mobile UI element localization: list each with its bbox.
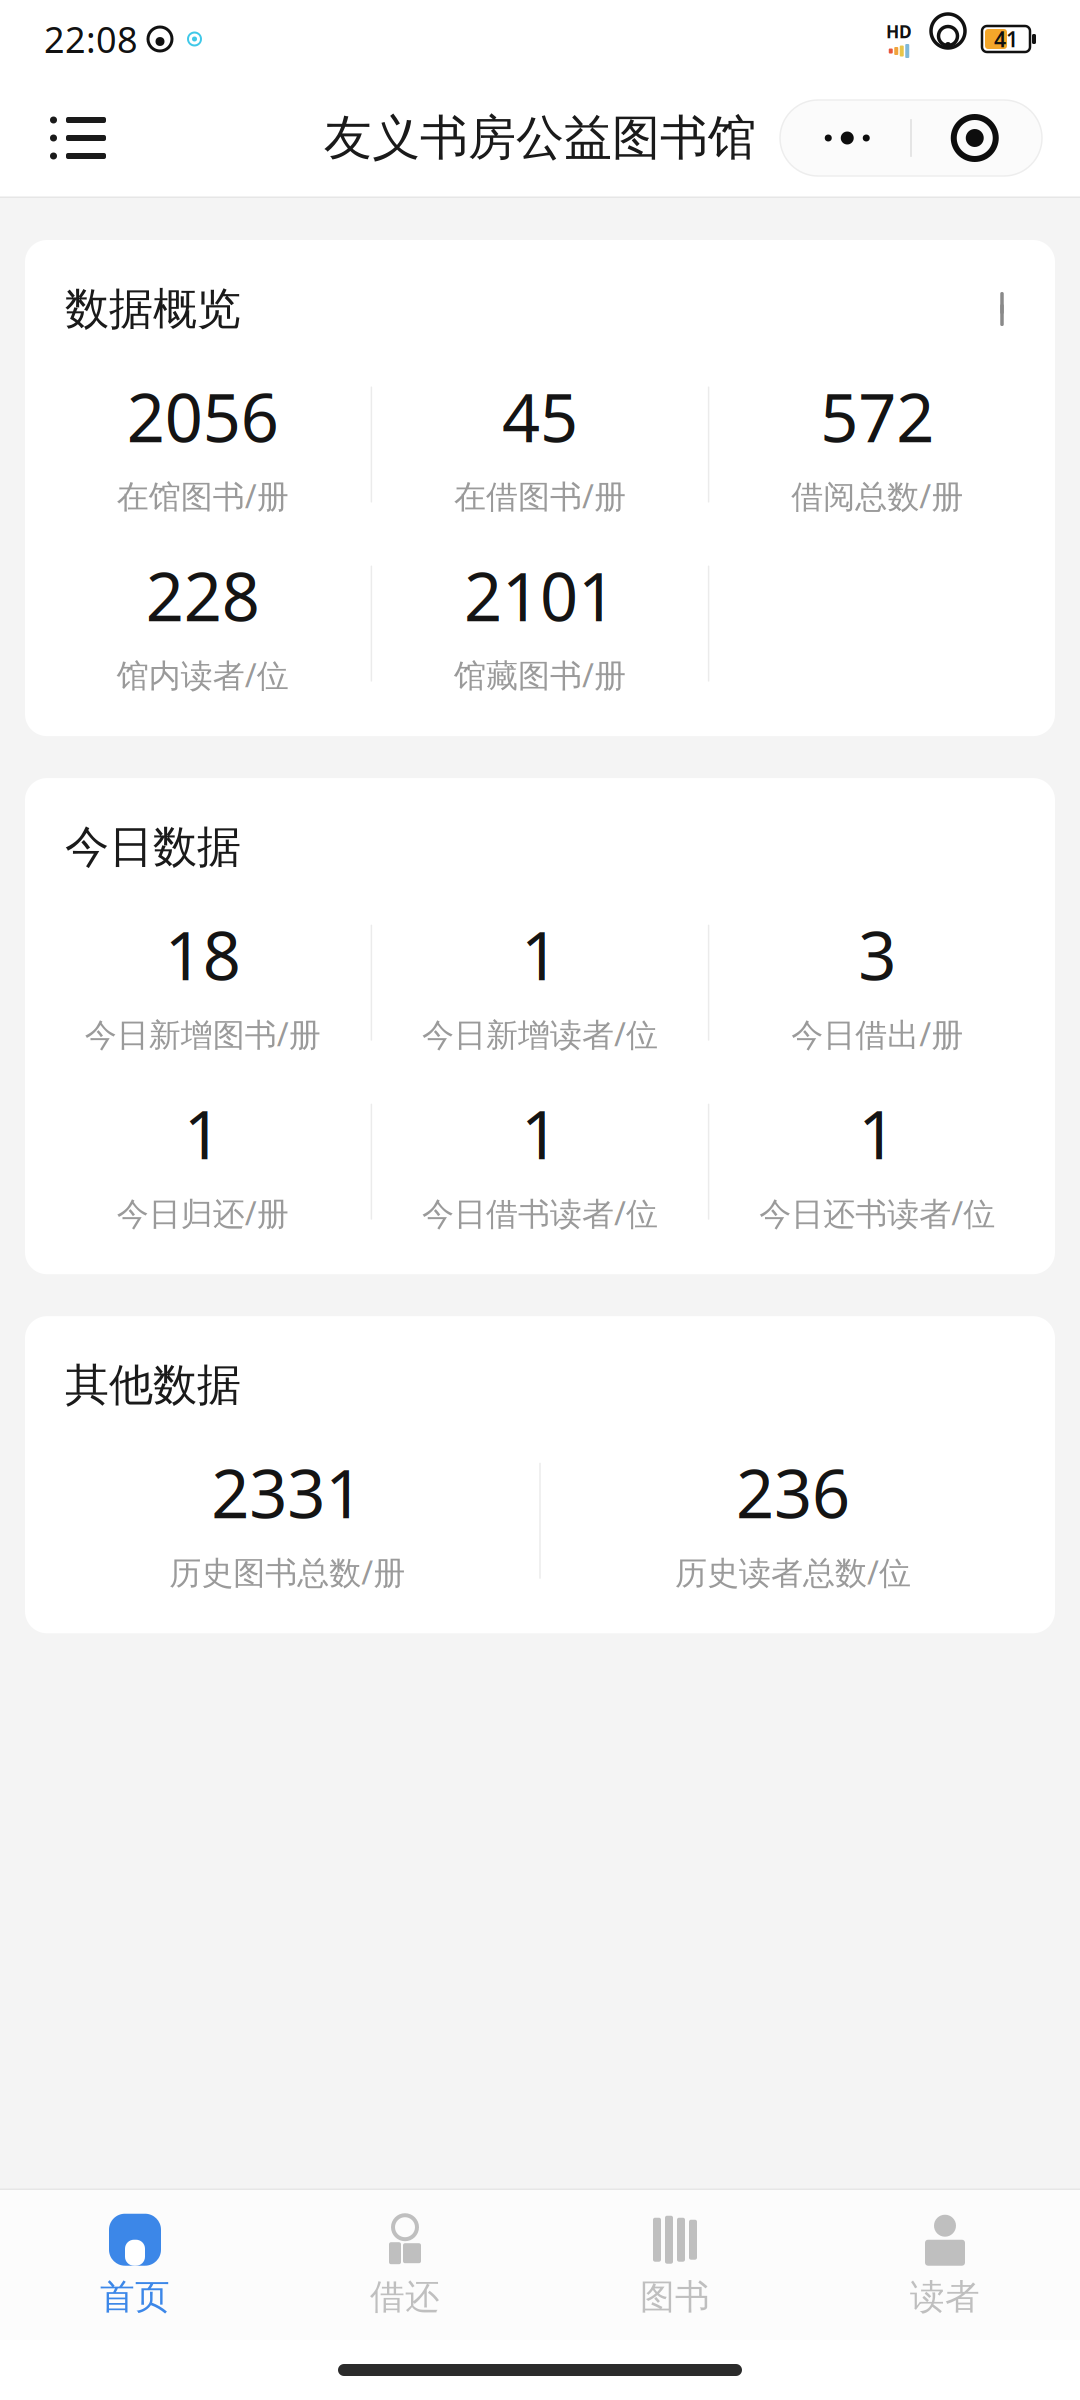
staticText: 历史图书总数/册 [169, 1551, 405, 1593]
staticText: 1 [521, 1089, 559, 1178]
button[interactable]: 借还 [270, 2200, 540, 2330]
staticText: 其他数据 [65, 1358, 241, 1412]
staticText: 数据概览 [65, 282, 241, 336]
staticText: 今日数据 [65, 820, 241, 874]
staticText: 今日借出/册 [791, 1013, 963, 1055]
staticText: 借阅总数/册 [791, 475, 963, 517]
staticText: 2101 [464, 551, 616, 640]
staticText: 馆藏图书/册 [454, 654, 626, 696]
staticText: 3 [858, 910, 896, 999]
staticText: HD [886, 20, 912, 43]
staticText: 41 [994, 25, 1018, 53]
staticText: 2331 [211, 1448, 363, 1537]
staticText: 在借图书/册 [454, 475, 626, 517]
staticText: 图书 [640, 2276, 710, 2318]
staticText: 236 [736, 1448, 850, 1537]
staticText: 友义书房公益图书馆 [324, 108, 756, 167]
staticText: 18 [165, 910, 241, 999]
staticText: 今日借书读者/位 [422, 1192, 658, 1234]
button[interactable]: 读者 [810, 2200, 1080, 2330]
button[interactable]: 首页 [0, 2200, 270, 2330]
staticText: 今日新增图书/册 [85, 1013, 321, 1055]
staticText: 572 [820, 372, 934, 460]
button[interactable]: Menu [38, 98, 118, 178]
staticText: 首页 [100, 2276, 170, 2318]
button[interactable]: More options [780, 100, 1042, 176]
staticText: 借还 [370, 2276, 440, 2318]
staticText: 45 [502, 372, 578, 460]
staticText: 读者 [910, 2276, 980, 2318]
staticText: 馆内读者/位 [117, 654, 289, 696]
staticText: 2056 [127, 372, 279, 460]
staticText: 在馆图书/册 [117, 475, 289, 517]
button[interactable]: 数据概览 [25, 240, 1055, 348]
staticText: 1 [521, 910, 559, 999]
staticText: 今日还书读者/位 [759, 1192, 995, 1234]
staticText: 1 [184, 1089, 222, 1178]
staticText: 1 [858, 1089, 896, 1178]
button[interactable]: 图书 [540, 2200, 810, 2330]
staticText: 今日新增读者/位 [422, 1013, 658, 1055]
staticText: 历史读者总数/位 [675, 1551, 911, 1593]
staticText: 今日归还/册 [117, 1192, 289, 1234]
staticText: 228 [146, 551, 260, 640]
staticText: 22:08 [44, 15, 138, 63]
